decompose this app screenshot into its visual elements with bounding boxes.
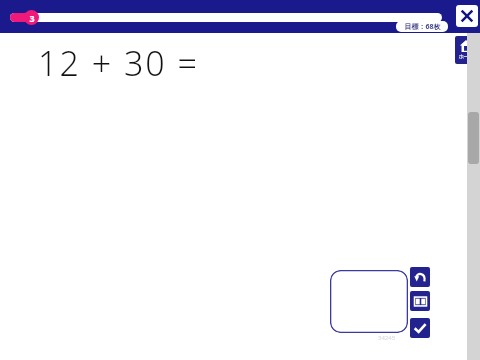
button[interactable]: 決定 [410, 318, 430, 338]
staticText: 12 + 30 = [38, 40, 200, 86]
button[interactable]: 答え入力欄 [330, 270, 408, 333]
button[interactable]: 閉じる [456, 5, 478, 27]
staticText: ホーム [458, 53, 474, 59]
button[interactable]: 画面を切り替える [410, 291, 430, 311]
button[interactable]: ホーム [455, 36, 477, 64]
button[interactable]: スクロール [468, 112, 479, 164]
button[interactable]: やり直す [410, 267, 430, 287]
staticText: 3 [29, 12, 35, 24]
staticText: 目標：68枚 [404, 22, 441, 32]
staticText: 34245 [378, 334, 396, 342]
